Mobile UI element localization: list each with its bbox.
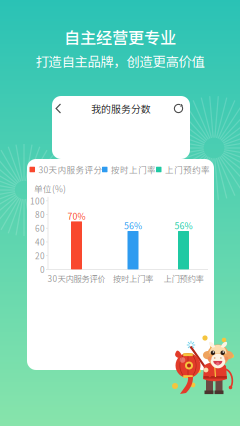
staticText: 自主经营更专业 [64,25,176,49]
staticText: 60 [35,222,45,234]
staticText: 100 [30,195,45,207]
staticText: 40 [35,236,45,248]
staticText: 上门预约率 [163,272,203,284]
staticText: 上门预约率 [165,163,210,176]
staticText: 20 [35,250,45,262]
staticText: 80 [35,208,45,220]
button[interactable]: Refresh [168,98,188,118]
staticText: 按时上门率 [113,272,153,284]
staticText: 按时上门率 [111,163,156,176]
button[interactable]: Back [48,98,68,118]
staticText: 70% [67,209,85,222]
staticText: 30天内服务评价 [47,272,105,284]
staticText: 我的服务分数 [91,101,151,116]
staticText: 56% [124,219,142,232]
staticText: 单位(%) [34,182,66,195]
staticText: 56% [174,219,192,232]
staticText: 0 [40,263,45,275]
staticText: 30天内服务评分 [38,163,102,176]
staticText: 打造自主品牌，创造更高价值 [35,51,204,71]
